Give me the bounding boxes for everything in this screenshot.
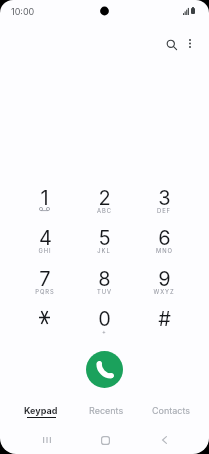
staticText: Keypad (24, 405, 58, 416)
staticText: 7 (39, 267, 51, 291)
staticText: 3 (158, 186, 171, 210)
button[interactable]: Contacts (140, 405, 202, 429)
button[interactable]: 6 (134, 226, 194, 266)
staticText: Contacts (152, 405, 191, 416)
staticText: 9 (158, 267, 171, 291)
button[interactable]: Home (88, 426, 122, 454)
button[interactable]: Back (147, 426, 181, 454)
button[interactable]: # (134, 307, 194, 347)
staticText: 5 (98, 226, 111, 250)
button[interactable]: 3 (134, 186, 194, 226)
staticText: 8 (98, 267, 111, 291)
staticText: JKL (97, 247, 111, 254)
staticText: 10:00 (11, 6, 35, 17)
button[interactable]: 2 (74, 186, 134, 226)
button[interactable]: 7 (15, 267, 74, 307)
staticText: ABC (97, 207, 112, 214)
staticText: PQRS (35, 288, 55, 295)
button[interactable]: 9 (134, 267, 194, 307)
staticText: TUV (97, 288, 112, 295)
staticText: DEF (157, 207, 171, 214)
button[interactable]: Keypad (10, 405, 72, 429)
staticText: Recents (89, 405, 124, 416)
staticText: MNO (156, 247, 173, 254)
staticText: WXYZ (153, 288, 175, 295)
button[interactable]: 1 (15, 186, 74, 226)
button[interactable] (15, 307, 74, 347)
staticText: 4 (39, 226, 52, 250)
button[interactable]: Search (155, 28, 189, 62)
staticText: # (158, 307, 171, 331)
staticText: GHI (38, 247, 52, 254)
button[interactable]: 0 (74, 307, 134, 347)
button[interactable]: Recents (30, 426, 64, 454)
staticText: 6 (158, 226, 171, 250)
staticText: + (102, 328, 107, 335)
button[interactable]: 4 (15, 226, 74, 266)
staticText: 0 (98, 307, 111, 331)
button[interactable]: Call (86, 351, 123, 388)
staticText: 2 (98, 186, 111, 210)
staticText: 1 (40, 186, 49, 210)
button[interactable]: More options (175, 28, 205, 58)
button[interactable]: Recents (75, 405, 137, 429)
button[interactable]: 8 (74, 267, 134, 307)
button[interactable]: 5 (74, 226, 134, 266)
